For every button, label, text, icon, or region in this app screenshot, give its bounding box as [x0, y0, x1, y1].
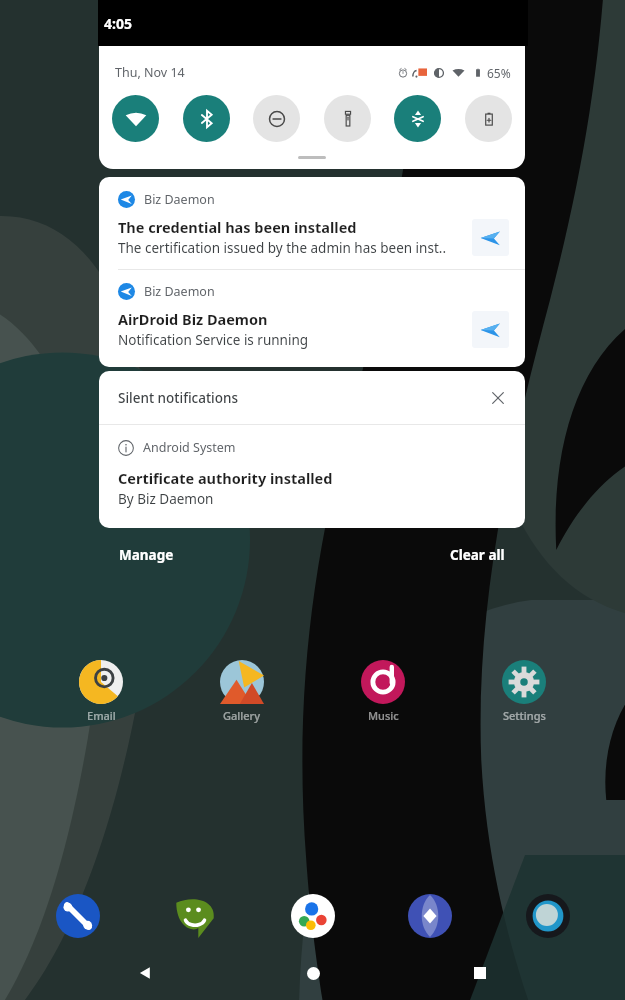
- staticText: Gallery: [223, 708, 261, 723]
- button[interactable]: Silent notifications: [99, 371, 525, 424]
- button[interactable]: app: [380, 894, 480, 938]
- staticText: By Biz Daemon: [118, 490, 214, 508]
- button[interactable]: Recent apps: [457, 950, 503, 996]
- staticText: Biz Daemon: [144, 283, 215, 300]
- staticText: The certification issued by the admin ha…: [118, 239, 447, 257]
- button[interactable]: Auto-rotate: [394, 95, 441, 142]
- staticText: Biz Daemon: [144, 191, 215, 208]
- button[interactable]: app: [263, 894, 363, 938]
- staticText: 65%: [487, 65, 511, 81]
- staticText: Silent notifications: [118, 389, 239, 407]
- button[interactable]: Gallery: [192, 660, 292, 723]
- button[interactable]: Home: [290, 950, 336, 996]
- staticText: Email: [87, 708, 116, 723]
- button[interactable]: Email: [51, 660, 151, 723]
- staticText: Music: [368, 708, 399, 723]
- button[interactable]: Wi-Fi: [112, 95, 159, 142]
- button[interactable]: Android System: [99, 425, 525, 528]
- button[interactable]: Flashlight: [324, 95, 371, 142]
- button[interactable]: Biz Daemon: [99, 177, 525, 269]
- staticText: Settings: [503, 708, 546, 723]
- button[interactable]: Settings: [474, 660, 574, 723]
- staticText: Clear all: [450, 546, 505, 564]
- button[interactable]: Manage: [99, 538, 194, 572]
- staticText: Certificate authority installed: [118, 468, 333, 488]
- button[interactable]: Bluetooth: [183, 95, 230, 142]
- button[interactable]: Dismiss silent notifications: [487, 387, 509, 409]
- button[interactable]: app: [145, 894, 245, 938]
- button[interactable]: Biz Daemon: [99, 270, 525, 367]
- staticText: AirDroid Biz Daemon: [118, 309, 268, 329]
- button[interactable]: app: [28, 894, 128, 938]
- staticText: Manage: [119, 546, 174, 564]
- button[interactable]: Do not disturb: [253, 95, 300, 142]
- staticText: Notification Service is running: [118, 331, 309, 349]
- button[interactable]: Back: [122, 950, 168, 996]
- button[interactable]: Clear all: [430, 538, 525, 572]
- button[interactable]: Battery saver: [465, 95, 512, 142]
- button[interactable]: Music: [333, 660, 433, 723]
- staticText: 4:05: [104, 14, 132, 33]
- staticText: The credential has been installed: [118, 217, 357, 237]
- button[interactable]: app: [498, 894, 598, 938]
- staticText: Thu, Nov 14: [115, 64, 185, 81]
- staticText: Android System: [143, 439, 236, 456]
